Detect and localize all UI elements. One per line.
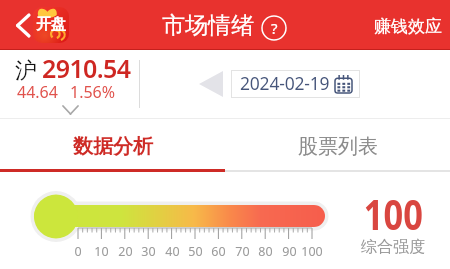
staticText: 赚钱效应 — [374, 16, 442, 37]
staticText: 综合强度 — [361, 237, 425, 257]
staticText: 44.64 — [17, 81, 58, 103]
button[interactable]: 数据分析 — [0, 120, 225, 172]
staticText: 数据分析 — [73, 134, 153, 159]
staticText: 90 — [282, 243, 297, 260]
staticText: 1.56% — [70, 81, 116, 103]
button[interactable]: 赚钱效应 — [366, 15, 450, 36]
staticText: 100 — [364, 185, 423, 241]
staticText: 市场情绪 — [162, 11, 254, 40]
staticText: 10 — [94, 243, 109, 260]
staticText: 60 — [211, 243, 226, 260]
button[interactable]: 股票列表 — [225, 120, 450, 172]
staticText: 80 — [258, 243, 273, 260]
button[interactable]: Help — [261, 15, 287, 41]
staticText: 50 — [188, 243, 203, 260]
staticText: 30 — [141, 243, 156, 260]
button[interactable]: 2024-02-19 — [231, 70, 360, 98]
staticText: 沪 — [15, 57, 37, 85]
staticText: 股票列表 — [298, 134, 378, 159]
staticText: 20 — [118, 243, 133, 260]
staticText: 2910.54 — [42, 51, 131, 85]
staticText: 0 — [74, 243, 82, 260]
staticText: 70 — [235, 243, 250, 260]
staticText: ? — [271, 18, 278, 38]
staticText: 开盘 — [36, 15, 66, 34]
staticText: 40 — [165, 243, 180, 260]
staticText: 100 — [301, 243, 323, 260]
staticText: 2024-02-19 — [240, 71, 330, 95]
button[interactable]: Back — [6, 9, 38, 41]
button[interactable]: Previous day — [194, 68, 228, 100]
button[interactable]: App logo — [33, 7, 69, 43]
